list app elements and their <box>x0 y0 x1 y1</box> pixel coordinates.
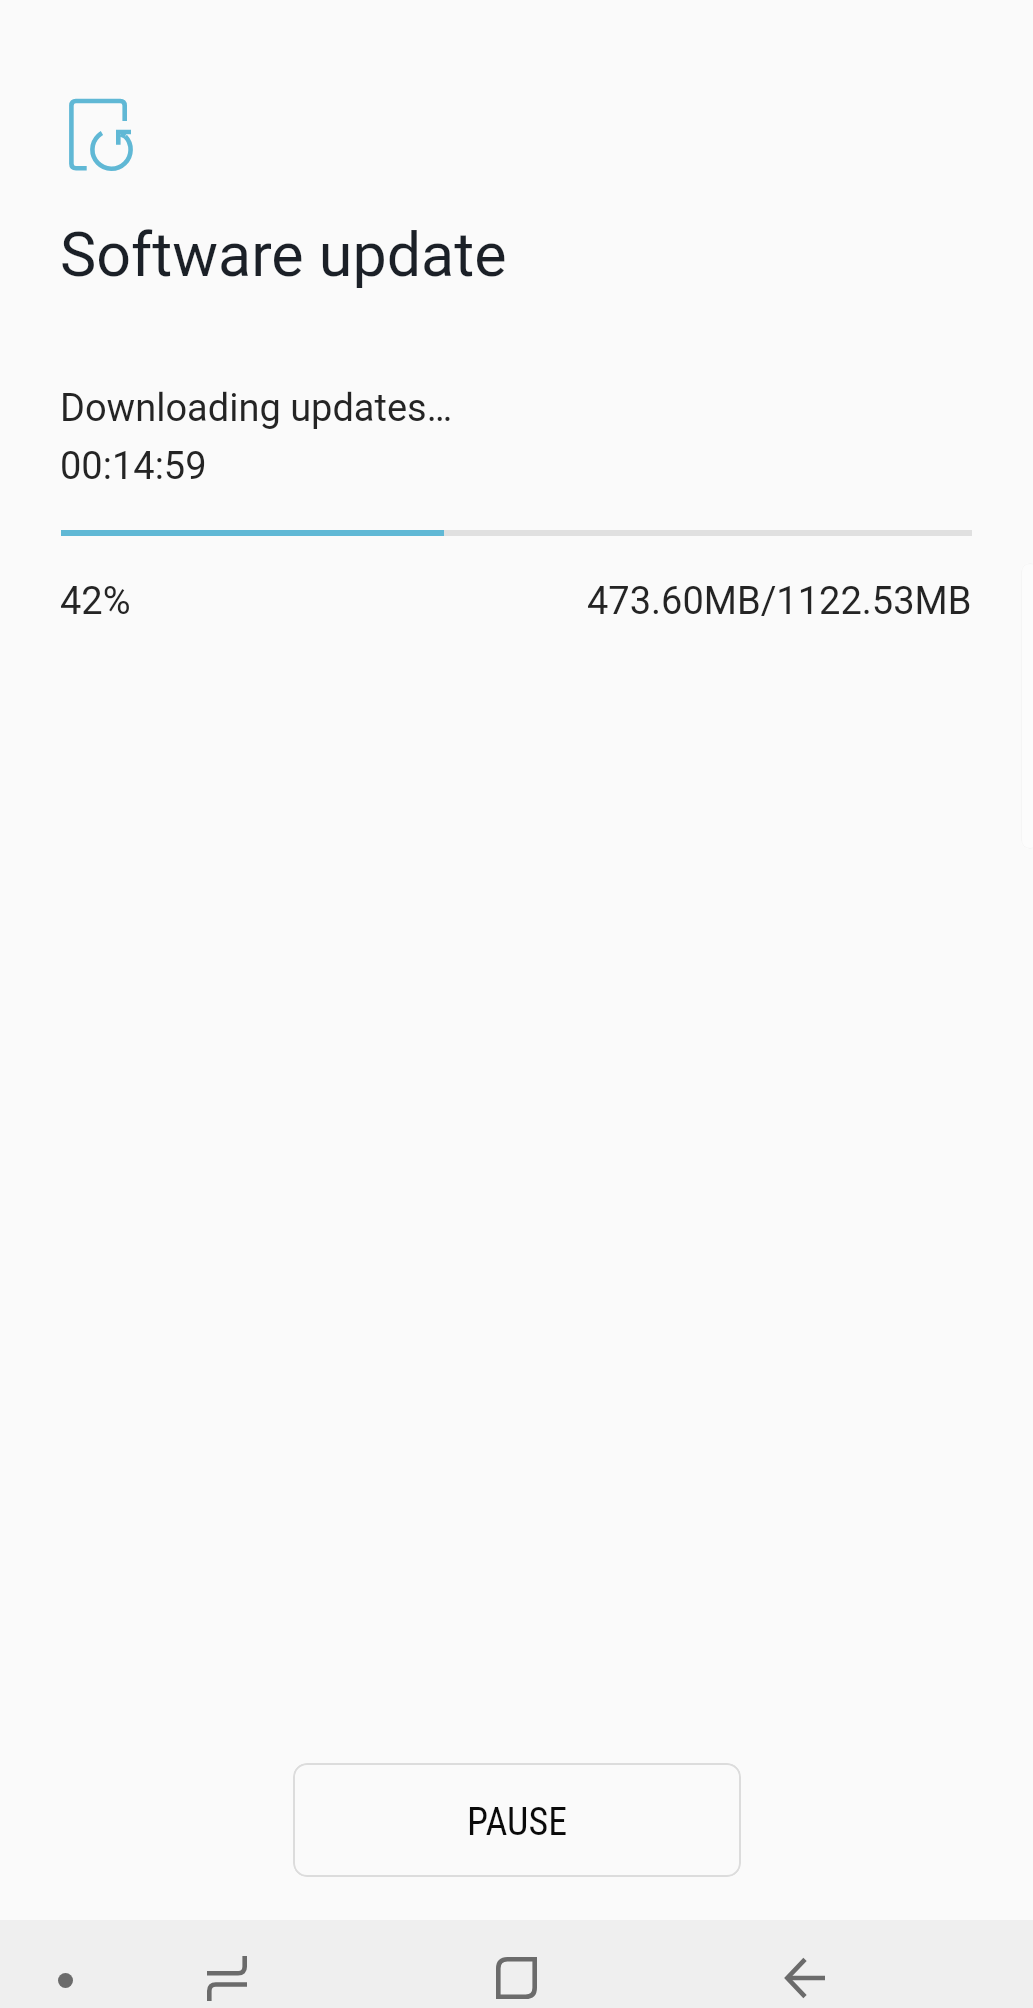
staticText: 00:14:59 <box>60 444 207 489</box>
staticText: 473.60MB/1122.53MB <box>587 579 972 624</box>
button[interactable]: Back <box>733 1920 877 2008</box>
button[interactable]: PAUSE <box>293 1763 741 1877</box>
button[interactable]: Show keyboard <box>14 1920 117 2008</box>
button[interactable]: Recent apps <box>155 1920 299 2008</box>
button[interactable]: Home <box>444 1920 588 2008</box>
staticText: Downloading updates… <box>60 386 453 431</box>
staticText: 42% <box>60 579 131 624</box>
staticText: Software update <box>60 219 507 290</box>
staticText: PAUSE <box>467 1800 568 1845</box>
